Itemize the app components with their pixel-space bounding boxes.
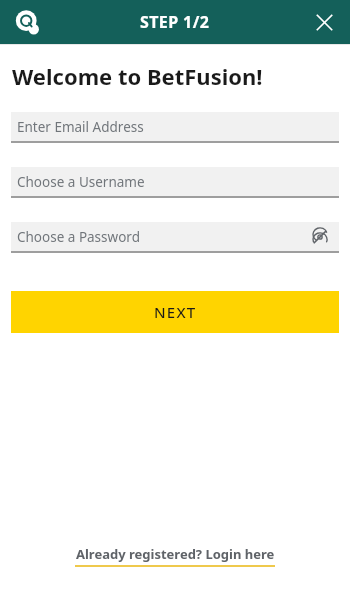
button[interactable]: Already registered? Login here: [75, 545, 275, 567]
staticText: STEP 1/2: [140, 11, 210, 33]
button[interactable]: NEXT: [11, 291, 339, 333]
button[interactable]: Choose a Username: [11, 167, 339, 196]
button[interactable]: Show password: [309, 226, 331, 248]
staticText: NEXT: [154, 302, 197, 322]
staticText: Already registered? Login here: [76, 545, 275, 563]
button[interactable]: Choose a Password: [11, 222, 339, 251]
staticText: Choose a Password: [17, 228, 309, 246]
staticText: Choose a Username: [17, 173, 339, 191]
staticText: Enter Email Address: [17, 118, 339, 136]
button[interactable]: Enter Email Address: [11, 112, 339, 141]
button[interactable]: Close: [310, 8, 338, 36]
button[interactable]: BetFusion logo: [12, 7, 42, 37]
staticText: Welcome to BetFusion!: [12, 61, 263, 91]
